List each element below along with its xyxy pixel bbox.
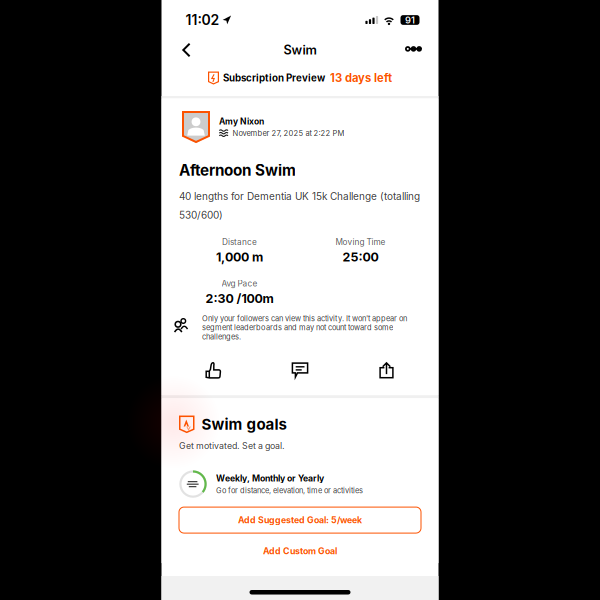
- staticText: Swim: [283, 42, 316, 58]
- staticText: Afternoon Swim: [179, 161, 296, 179]
- staticText: Avg Pace: [221, 279, 257, 289]
- staticText: Only your followers can view this activi…: [202, 314, 407, 341]
- button[interactable]: Like: [195, 357, 231, 383]
- staticText: 1,000 m: [216, 250, 263, 265]
- staticText: 25:00: [342, 250, 378, 265]
- staticText: 11:02: [185, 11, 219, 28]
- staticText: Swim goals: [201, 415, 286, 433]
- button[interactable]: Back: [171, 36, 201, 64]
- staticText: Weekly, Monthly or Yearly: [216, 473, 324, 484]
- staticText: 530/600): [179, 209, 223, 221]
- button[interactable]: Subscription Preview: [161, 60, 438, 96]
- button[interactable]: Comment: [282, 357, 318, 383]
- staticText: 40 lengths for Dementia UK 15k Challenge…: [179, 190, 420, 202]
- staticText: Add Suggested Goal: 5/week: [238, 515, 362, 525]
- staticText: Go for distance, elevation, time or acti…: [216, 486, 363, 495]
- staticText: Amy Nixon: [219, 116, 264, 126]
- staticText: Distance: [222, 237, 257, 247]
- button[interactable]: Share: [368, 357, 404, 383]
- button[interactable]: Amy Nixon profile: [182, 111, 210, 143]
- staticText: 13 days left: [330, 71, 392, 85]
- button[interactable]: Add Custom Goal: [179, 539, 421, 563]
- staticText: Moving Time: [335, 237, 385, 247]
- staticText: 91: [405, 14, 415, 26]
- button[interactable]: Add Suggested Goal: 5/week: [179, 507, 421, 533]
- staticText: November 27, 2025 at 2:22 PM: [232, 129, 344, 138]
- staticText: Add Custom Goal: [263, 546, 337, 556]
- button[interactable]: More options: [398, 36, 428, 64]
- staticText: Subscription Preview: [223, 72, 325, 84]
- staticText: Get motivated. Set a goal.: [179, 440, 285, 451]
- staticText: 2:30 /100m: [205, 291, 273, 306]
